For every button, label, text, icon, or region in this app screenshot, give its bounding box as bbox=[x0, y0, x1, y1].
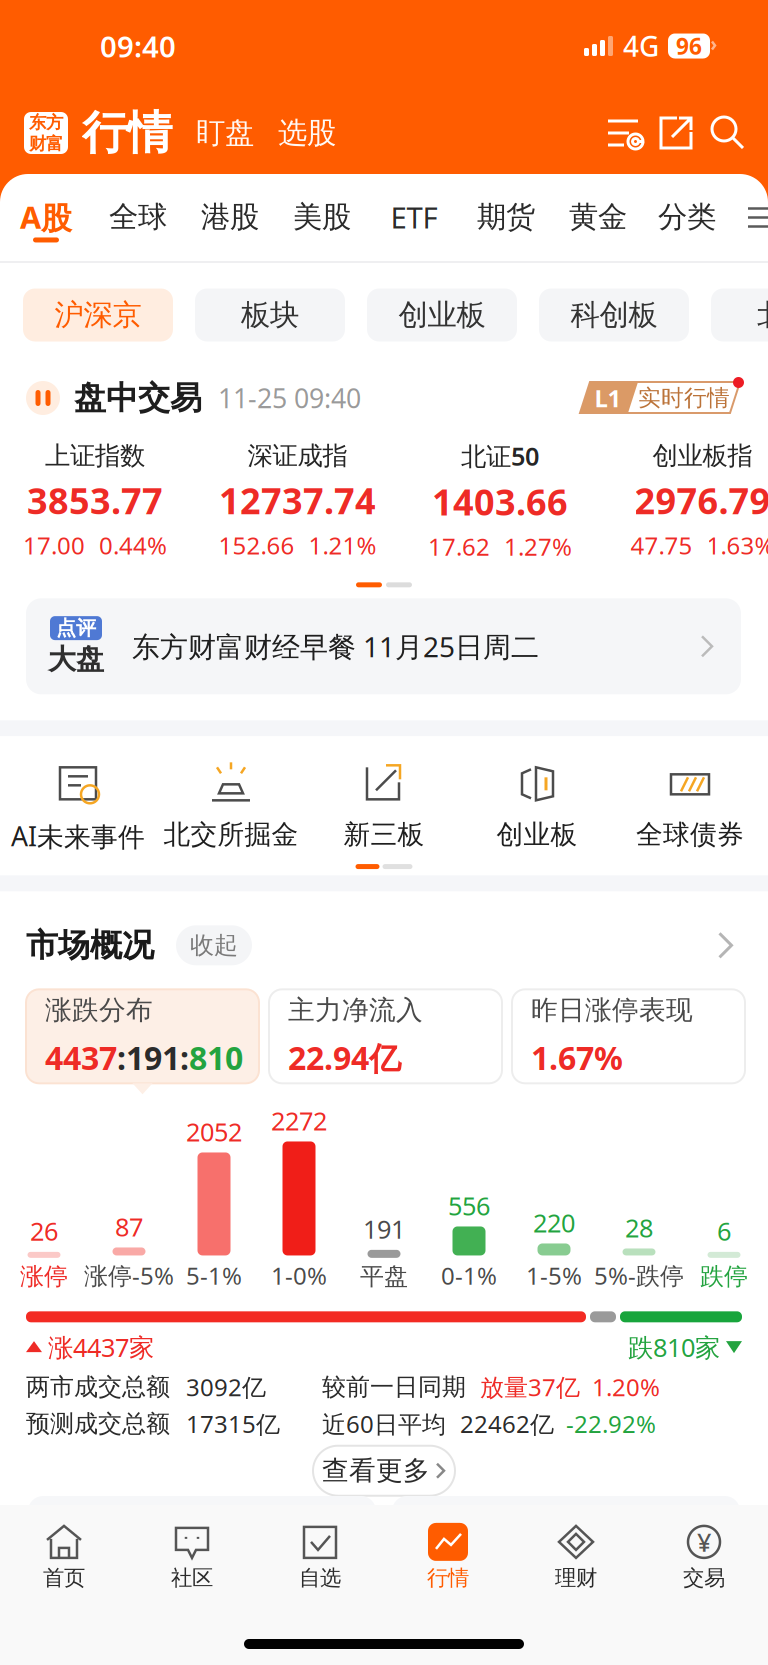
staticText: 87 bbox=[115, 1210, 143, 1243]
button[interactable]: 理财 bbox=[512, 1505, 640, 1609]
staticText: 跌810家 bbox=[628, 1330, 720, 1364]
button[interactable]: 创业板 bbox=[460, 736, 613, 875]
button[interactable]: 社区 bbox=[128, 1505, 256, 1609]
staticText: 5-1% bbox=[186, 1259, 242, 1291]
button[interactable]: 选股 bbox=[254, 115, 336, 151]
staticText: 平盘 bbox=[360, 1262, 408, 1291]
staticText: 1403.66 bbox=[432, 478, 568, 525]
staticText: 4437 bbox=[45, 1036, 117, 1079]
button[interactable]: More bbox=[702, 921, 750, 969]
staticText: 收起 bbox=[190, 931, 238, 960]
button[interactable]: 主力净流入 bbox=[269, 989, 502, 1094]
button[interactable]: 分类 bbox=[644, 174, 730, 261]
staticText: 昨日涨停表现 bbox=[531, 994, 693, 1026]
staticText: 全球 bbox=[109, 199, 167, 235]
staticText: 财富 bbox=[29, 133, 63, 154]
staticText: 26 bbox=[30, 1214, 58, 1248]
staticText: 22.94亿 bbox=[288, 1036, 401, 1079]
button[interactable]: A股 bbox=[0, 174, 92, 261]
button[interactable]: 全球 bbox=[92, 174, 184, 261]
button[interactable]: 美股 bbox=[276, 174, 368, 261]
staticText: 09:40 bbox=[100, 26, 176, 65]
button[interactable]: ETF bbox=[368, 174, 460, 261]
button[interactable]: 黄金 bbox=[552, 174, 644, 261]
button[interactable]: 昨日涨停表现 bbox=[512, 989, 745, 1094]
staticText: 创业板指 bbox=[652, 440, 752, 471]
button[interactable]: 自选 bbox=[256, 1505, 384, 1609]
button[interactable]: 首页 bbox=[0, 1505, 128, 1609]
staticText: 行情 bbox=[427, 1565, 469, 1591]
staticText: 北交所掘金 bbox=[163, 818, 298, 851]
staticText: 沪深京 bbox=[54, 297, 141, 333]
staticText: ¥ bbox=[697, 1525, 711, 1559]
staticText: 全球债券 bbox=[636, 818, 744, 851]
button[interactable]: 科创板 bbox=[539, 288, 689, 341]
staticText: 3092亿 bbox=[186, 1371, 266, 1403]
staticText: 96 bbox=[676, 31, 702, 61]
staticText: 北证 bbox=[757, 297, 768, 333]
staticText: ETF bbox=[390, 197, 437, 236]
staticText: 2272 bbox=[271, 1104, 327, 1137]
staticText: 预测成交总额 bbox=[26, 1409, 170, 1438]
staticText: 4G bbox=[623, 27, 659, 65]
staticText: 行情 bbox=[82, 105, 172, 161]
button[interactable]: 查看更多 bbox=[313, 1446, 455, 1496]
staticText: 近60日平均 bbox=[322, 1408, 446, 1440]
staticText: 220 bbox=[533, 1206, 575, 1239]
staticText: 深证成指 bbox=[247, 440, 347, 471]
staticText: 创业板 bbox=[398, 297, 485, 333]
staticText: 22462亿 bbox=[460, 1408, 554, 1440]
staticText: 2976.79 bbox=[634, 476, 768, 524]
staticText: 新三板 bbox=[343, 818, 424, 851]
staticText: -22.92% bbox=[566, 1408, 656, 1440]
button[interactable]: 沪深京 bbox=[23, 288, 173, 341]
staticText: 实时行情 bbox=[638, 384, 730, 412]
staticText: 跌停 bbox=[700, 1262, 748, 1291]
button[interactable]: 涨跌分布 bbox=[26, 989, 259, 1094]
staticText: 涨停-5% bbox=[84, 1259, 174, 1291]
staticText: 盯盘 bbox=[196, 115, 254, 151]
staticText: 1.20% bbox=[592, 1371, 660, 1403]
button[interactable]: ¥ bbox=[640, 1505, 768, 1609]
staticText: :191: bbox=[117, 1036, 189, 1079]
staticText: 3853.77 bbox=[27, 476, 163, 524]
button[interactable]: Search bbox=[702, 108, 754, 158]
button[interactable]: AI未来事件 bbox=[1, 736, 154, 875]
staticText: 放量37亿 bbox=[480, 1371, 580, 1403]
staticText: AI未来事件 bbox=[11, 818, 145, 854]
staticText: 0-1% bbox=[441, 1259, 497, 1291]
button[interactable]: 全球债券 bbox=[613, 736, 766, 875]
staticText: 11-25 09:40 bbox=[218, 380, 361, 416]
button[interactable]: 新三板 bbox=[307, 736, 460, 875]
staticText: 选股 bbox=[278, 115, 336, 151]
button[interactable]: 港股 bbox=[184, 174, 276, 261]
button[interactable]: 北交所掘金 bbox=[154, 736, 307, 875]
staticText: 港股 bbox=[201, 199, 259, 235]
button[interactable]: 盯盘 bbox=[172, 115, 254, 151]
staticText: 自选 bbox=[299, 1565, 341, 1591]
staticText: 1-0% bbox=[271, 1259, 327, 1291]
staticText: 社区 bbox=[171, 1565, 213, 1591]
staticText: 2052 bbox=[186, 1115, 242, 1148]
button[interactable]: All categories bbox=[730, 174, 768, 261]
staticText: 首页 bbox=[43, 1565, 85, 1591]
staticText: 556 bbox=[448, 1189, 490, 1222]
staticText: 28 bbox=[625, 1211, 653, 1244]
staticText: 47.75 bbox=[630, 529, 692, 561]
button[interactable]: 期货 bbox=[460, 174, 552, 261]
button[interactable]: 点评 bbox=[0, 598, 768, 694]
button[interactable]: 北证 bbox=[711, 288, 768, 341]
button[interactable]: Share bbox=[650, 108, 702, 158]
button[interactable]: 收起 bbox=[154, 925, 252, 965]
staticText: 1.67% bbox=[531, 1036, 623, 1079]
staticText: 盘中交易 bbox=[74, 378, 202, 418]
button[interactable]: Filter bbox=[598, 108, 650, 158]
staticText: 创业板 bbox=[496, 818, 577, 851]
staticText: 810 bbox=[189, 1036, 243, 1079]
button[interactable]: 创业板 bbox=[367, 288, 517, 341]
button[interactable]: 板块 bbox=[195, 288, 345, 341]
button[interactable]: 行情 bbox=[384, 1505, 512, 1609]
staticText: 两市成交总额 bbox=[26, 1372, 170, 1402]
staticText: 1.21% bbox=[308, 529, 376, 561]
staticText: 17315亿 bbox=[186, 1408, 280, 1440]
